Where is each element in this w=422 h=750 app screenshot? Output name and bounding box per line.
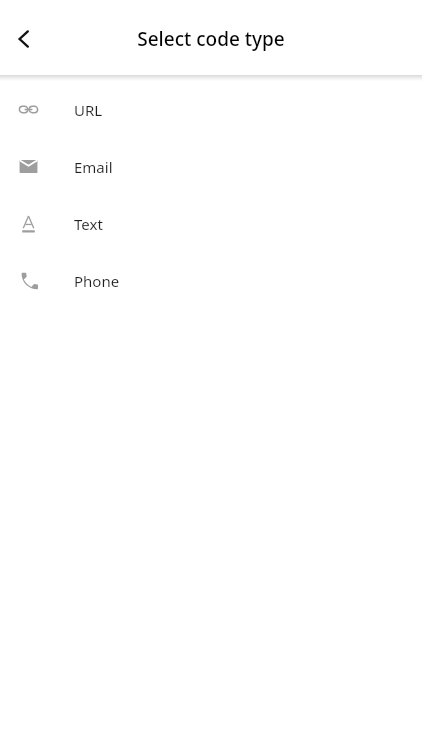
- button[interactable]: URL: [0, 81, 422, 138]
- staticText: Email: [74, 157, 113, 177]
- staticText: Select code type: [0, 26, 422, 52]
- button[interactable]: Back: [0, 15, 48, 63]
- button[interactable]: Email: [0, 138, 422, 195]
- staticText: URL: [74, 100, 103, 120]
- button[interactable]: Text: [0, 195, 422, 252]
- staticText: Phone: [74, 271, 120, 291]
- button[interactable]: Phone: [0, 252, 422, 309]
- staticText: Text: [74, 214, 103, 234]
